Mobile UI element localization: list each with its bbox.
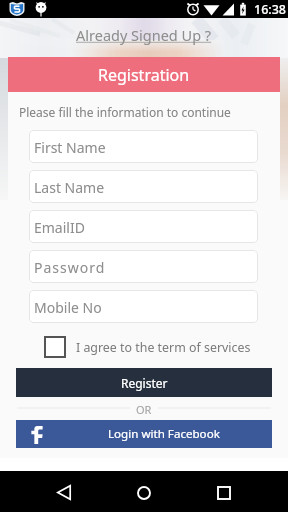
staticText: Mobile No bbox=[34, 298, 102, 317]
staticText: Login with Facebook bbox=[108, 426, 220, 442]
button[interactable]: Register bbox=[16, 368, 272, 397]
staticText: EmailID bbox=[34, 218, 85, 237]
staticText: I agree to the term of services bbox=[76, 339, 251, 356]
button[interactable]: Password bbox=[29, 250, 258, 283]
staticText: Password bbox=[34, 258, 106, 277]
staticText: Please fill the information to continue bbox=[19, 104, 231, 120]
button[interactable]: Login with Facebook bbox=[16, 420, 272, 448]
button[interactable]: Last Name bbox=[29, 170, 258, 203]
button[interactable]: Back bbox=[44, 471, 84, 512]
button[interactable]: Home bbox=[124, 471, 164, 512]
staticText: Registration bbox=[98, 64, 190, 86]
button[interactable]: First Name bbox=[29, 130, 258, 163]
staticText: Register bbox=[121, 375, 168, 391]
staticText: Already Signed Up ? bbox=[76, 25, 212, 45]
staticText: 16:38 bbox=[254, 1, 287, 18]
button[interactable]: EmailID bbox=[29, 210, 258, 243]
button[interactable]: Mobile No bbox=[29, 290, 258, 323]
staticText: First Name bbox=[34, 138, 106, 157]
staticText: Last Name bbox=[34, 178, 105, 197]
button[interactable]: Registration bbox=[8, 57, 280, 92]
button[interactable]: Recent apps bbox=[204, 471, 244, 512]
button[interactable]: I agree to the term of services bbox=[44, 336, 251, 358]
button[interactable]: Already Signed Up ? bbox=[70, 23, 218, 47]
staticText: OR bbox=[136, 402, 152, 416]
